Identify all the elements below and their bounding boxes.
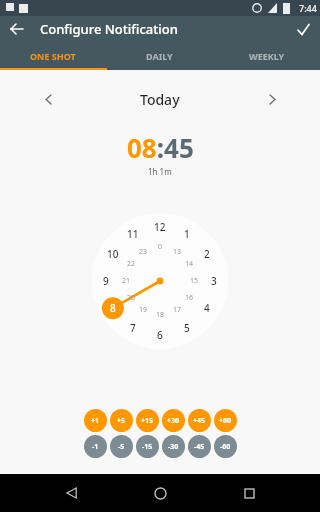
button[interactable]: Done: [292, 18, 314, 40]
button[interactable]: +15: [136, 409, 159, 432]
button[interactable]: -15: [136, 435, 159, 458]
staticText: 14: [185, 259, 194, 269]
staticText: 21: [122, 276, 131, 286]
staticText: DAILY: [146, 50, 173, 62]
staticText: 8: [110, 301, 116, 315]
button[interactable]: Back: [55, 476, 89, 510]
staticText: -5: [118, 442, 125, 452]
staticText: 0: [158, 242, 163, 252]
staticText: 17: [173, 305, 182, 315]
button[interactable]: +60: [214, 409, 237, 432]
staticText: 13: [173, 247, 182, 257]
staticText: 12: [154, 220, 166, 234]
staticText: 16: [185, 293, 194, 303]
button[interactable]: +1: [84, 409, 107, 432]
staticText: -45: [194, 442, 205, 452]
staticText: +1: [91, 416, 100, 426]
staticText: 18: [156, 310, 165, 320]
staticText: +60: [219, 416, 232, 426]
staticText: 2: [204, 247, 210, 261]
staticText: +15: [141, 416, 154, 426]
staticText: 20: [127, 293, 136, 303]
button[interactable]: -30: [162, 435, 185, 458]
button[interactable]: +30: [162, 409, 185, 432]
button[interactable]: +5: [110, 409, 133, 432]
button[interactable]: Back: [6, 18, 28, 40]
staticText: 3: [211, 274, 217, 288]
staticText: 1h 1m: [148, 166, 172, 177]
button[interactable]: Previous day: [34, 85, 62, 113]
staticText: -1: [92, 442, 99, 452]
button[interactable]: DAILY: [106, 42, 213, 70]
button[interactable]: Recent apps: [232, 476, 266, 510]
button[interactable]: -45: [188, 435, 211, 458]
staticText: +5: [117, 416, 126, 426]
staticText: +30: [167, 416, 180, 426]
staticText: 7: [130, 321, 136, 335]
staticText: 22: [127, 259, 136, 269]
staticText: 7:44: [299, 2, 317, 14]
button[interactable]: +45: [188, 409, 211, 432]
button[interactable]: -1: [84, 435, 107, 458]
staticText: 9: [103, 274, 109, 288]
button[interactable]: -5: [110, 435, 133, 458]
staticText: +45: [193, 416, 206, 426]
button[interactable]: Home: [143, 476, 177, 510]
staticText: WEEKLY: [249, 50, 285, 62]
staticText: 08:45: [127, 130, 194, 165]
staticText: -15: [142, 442, 153, 452]
button[interactable]: Next day: [258, 85, 286, 113]
staticText: 23: [139, 247, 148, 257]
staticText: ONE SHOT: [30, 50, 76, 62]
staticText: 15: [190, 276, 199, 286]
staticText: 19: [139, 305, 148, 315]
staticText: -60: [220, 442, 231, 452]
staticText: 11: [127, 227, 139, 241]
staticText: 1: [184, 227, 190, 241]
staticText: 4: [204, 301, 210, 315]
staticText: 5: [184, 321, 190, 335]
button[interactable]: -60: [214, 435, 237, 458]
button[interactable]: WEEKLY: [213, 42, 320, 70]
button[interactable]: ONE SHOT: [0, 42, 106, 70]
staticText: 10: [107, 247, 119, 261]
staticText: -30: [168, 442, 179, 452]
staticText: Configure Notification: [40, 20, 178, 38]
staticText: Today: [140, 90, 180, 109]
staticText: 6: [157, 328, 163, 342]
